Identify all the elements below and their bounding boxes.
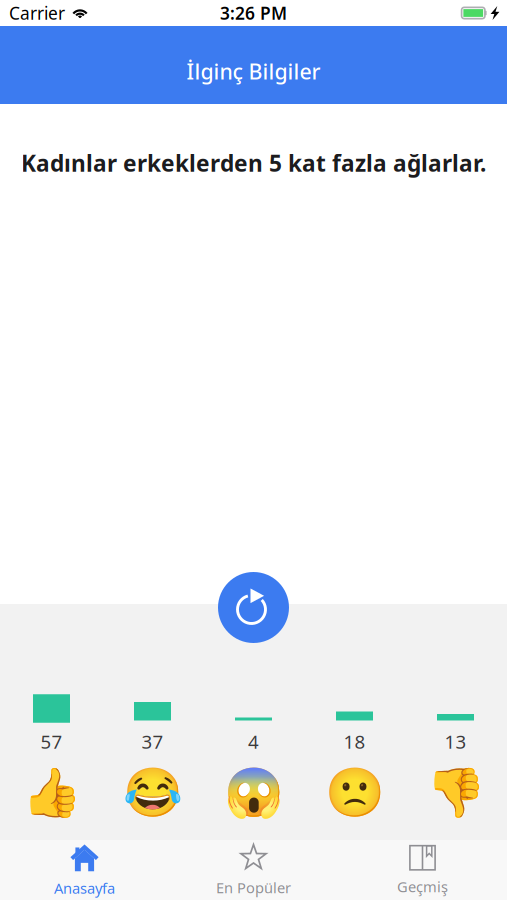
staticText: 4 bbox=[248, 729, 259, 754]
staticText: 3:26 PM bbox=[220, 1, 287, 24]
staticText: 😂 bbox=[122, 765, 182, 820]
staticText: 😱 bbox=[223, 765, 283, 820]
button[interactable]: Yenile bbox=[218, 572, 289, 643]
staticText: İlginç Bilgiler bbox=[186, 57, 320, 85]
staticText: 37 bbox=[141, 729, 163, 754]
button[interactable]: Şaşırtıcı bbox=[203, 694, 304, 814]
staticText: 👍 bbox=[21, 765, 81, 820]
button[interactable]: Komik bbox=[102, 694, 203, 814]
button[interactable]: Üzücü bbox=[304, 694, 405, 814]
staticText: 57 bbox=[40, 729, 62, 754]
staticText: Anasayfa bbox=[54, 878, 115, 898]
staticText: 🙁 bbox=[324, 765, 384, 820]
staticText: En Popüler bbox=[216, 878, 291, 897]
button[interactable]: Beğen bbox=[1, 694, 102, 814]
button[interactable]: En Popüler bbox=[169, 840, 338, 900]
staticText: 13 bbox=[444, 729, 466, 754]
staticText: Carrier bbox=[9, 1, 65, 24]
staticText: 18 bbox=[343, 729, 365, 754]
staticText: Kadınlar erkeklerden 5 kat fazla ağlarla… bbox=[21, 148, 486, 178]
staticText: Geçmiş bbox=[397, 877, 448, 896]
button[interactable]: Beğenme bbox=[405, 694, 506, 814]
staticText: 👎 bbox=[425, 765, 485, 820]
button[interactable]: Geçmiş bbox=[338, 840, 507, 900]
button[interactable]: Anasayfa bbox=[0, 840, 169, 900]
